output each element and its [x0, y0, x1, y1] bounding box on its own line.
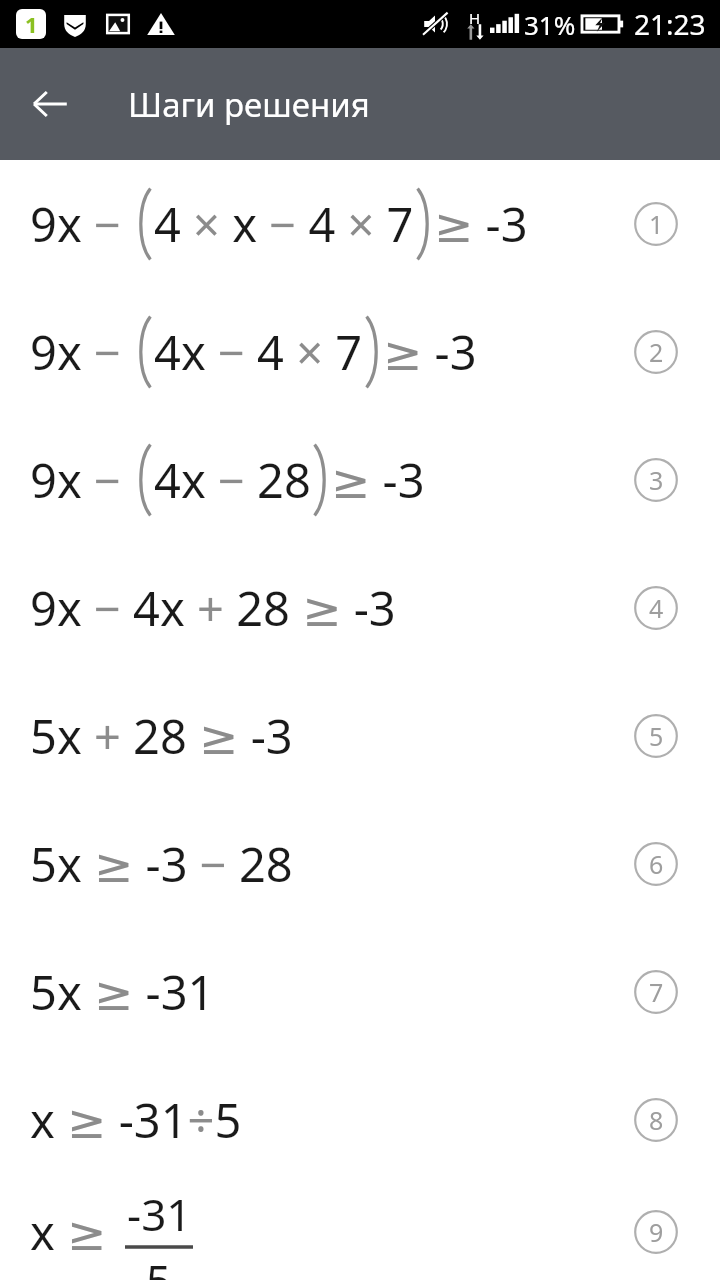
- button[interactable]: 5x ≥ -3 − 28: [0, 800, 720, 928]
- staticText: 4: [649, 591, 664, 625]
- button[interactable]: 9x −: [0, 416, 720, 544]
- staticText: x ≥: [30, 1200, 119, 1264]
- staticText: ≥ -3: [383, 320, 477, 384]
- staticText: 31%: [524, 7, 576, 42]
- staticText: 2: [649, 335, 664, 369]
- staticText: 7: [649, 975, 664, 1009]
- staticText: ≥ -3: [434, 192, 528, 256]
- staticText: 5: [649, 719, 664, 753]
- staticText: 21:23: [634, 5, 706, 43]
- staticText: Шаги решения: [128, 82, 370, 127]
- staticText: ≥ -3: [331, 448, 425, 512]
- staticText: -31: [127, 1184, 192, 1244]
- staticText: 9x −: [30, 192, 134, 256]
- staticText: 6: [649, 847, 664, 881]
- staticText: 9x − 4x + 28 ≥ -3: [30, 576, 396, 640]
- staticText: 5x ≥ -3 − 28: [30, 832, 293, 896]
- staticText: 8: [649, 1103, 664, 1137]
- staticText: 9x −: [30, 448, 134, 512]
- staticText: 9: [649, 1215, 664, 1249]
- staticText: 5x + 28 ≥ -3: [30, 704, 293, 768]
- button[interactable]: x ≥ -31÷5: [0, 1056, 720, 1184]
- staticText: 1: [25, 9, 38, 39]
- staticText: 5: [146, 1250, 172, 1280]
- staticText: 3: [649, 463, 664, 497]
- staticText: 1: [649, 207, 664, 241]
- staticText: 4 × x − 4 × 7: [154, 192, 414, 256]
- staticText: H: [469, 8, 481, 28]
- staticText: 9x −: [30, 320, 134, 384]
- staticText: 4x − 4 × 7: [154, 320, 363, 384]
- button[interactable]: 9x −: [0, 160, 720, 288]
- button[interactable]: x ≥: [0, 1184, 720, 1280]
- staticText: 5x ≥ -31: [30, 960, 215, 1024]
- button[interactable]: 9x −: [0, 288, 720, 416]
- button[interactable]: 5x ≥ -31: [0, 928, 720, 1056]
- button[interactable]: 9x − 4x + 28 ≥ -3: [0, 544, 720, 672]
- button[interactable]: Back: [22, 76, 78, 132]
- staticText: x ≥ -31÷5: [30, 1088, 242, 1152]
- staticText: 4x − 28: [154, 448, 311, 512]
- button[interactable]: 5x + 28 ≥ -3: [0, 672, 720, 800]
